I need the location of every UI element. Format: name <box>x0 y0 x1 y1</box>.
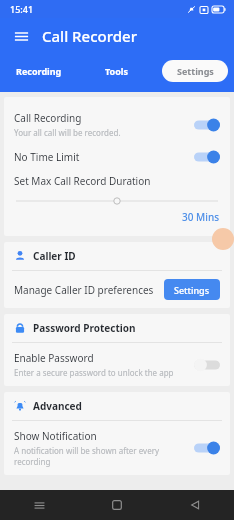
staticText: Call Recording <box>14 111 82 125</box>
button[interactable]: Open navigation menu <box>8 23 34 49</box>
staticText: Enter a secure password to unlock the ap… <box>14 367 174 378</box>
button[interactable]: No Time Limit <box>4 144 230 170</box>
staticText: Show Notification <box>14 429 97 443</box>
staticText: Manage Caller ID preferences <box>14 283 164 297</box>
staticText: No Time Limit <box>14 150 80 164</box>
staticText: Advanced <box>33 399 82 413</box>
button[interactable]: Call Recording <box>4 105 230 144</box>
staticText: Recording <box>16 65 62 77</box>
button[interactable]: Caller ID <box>4 242 230 270</box>
button[interactable]: Password Protection <box>4 314 230 342</box>
staticText: Your all call will be recorded. <box>14 127 121 138</box>
button[interactable]: Show Notification <box>4 421 230 475</box>
button[interactable]: Toggle on <box>194 118 220 132</box>
staticText: 30 Mins <box>182 210 220 224</box>
button[interactable]: Toggle on <box>194 441 220 455</box>
staticText: A notification will be shown after every… <box>14 445 188 467</box>
button[interactable]: Recent apps <box>0 499 78 512</box>
button[interactable]: Recording <box>0 65 78 77</box>
button[interactable]: Settings <box>162 60 228 82</box>
staticText: 15:41 <box>10 3 34 15</box>
button[interactable]: Settings <box>164 279 220 300</box>
button[interactable]: Home <box>78 499 156 511</box>
staticText: Set Max Call Record Duration <box>14 174 151 188</box>
staticText: Settings <box>177 65 214 77</box>
staticText: Caller ID <box>33 249 76 263</box>
button[interactable]: Advanced <box>4 392 230 420</box>
staticText: Password Protection <box>33 321 136 335</box>
staticText: Enable Password <box>14 351 94 365</box>
button[interactable]: Enable Password <box>4 343 230 386</box>
staticText: Call Recorder <box>42 26 138 46</box>
button[interactable]: Set Max Call Record Duration <box>4 170 230 228</box>
button[interactable]: Floating caller bubble <box>212 228 234 250</box>
button[interactable]: Toggle on <box>194 150 220 164</box>
button[interactable]: Back <box>156 499 234 511</box>
staticText: Tools <box>105 65 129 77</box>
button[interactable]: Tools <box>78 65 156 77</box>
button[interactable]: Toggle off <box>194 358 220 372</box>
staticText: Settings <box>174 284 210 296</box>
